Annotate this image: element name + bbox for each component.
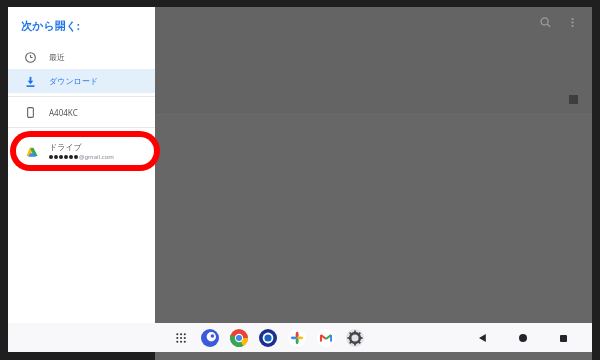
button[interactable]: Gmail — [316, 328, 336, 348]
staticText: 次から開く: — [21, 18, 80, 33]
button[interactable]: Search — [535, 12, 555, 32]
button[interactable]: ドライブ — [16, 137, 154, 165]
button[interactable]: Back — [474, 329, 492, 347]
button[interactable]: Home — [514, 329, 532, 347]
button[interactable]: 最近 — [8, 45, 155, 69]
button[interactable]: Recents — [554, 329, 572, 347]
staticText: ドライブ — [49, 142, 82, 152]
button[interactable]: All apps — [171, 328, 191, 348]
staticText: @gmail.com — [79, 153, 114, 161]
button[interactable]: Camera — [258, 328, 278, 348]
staticText: 最近 — [49, 52, 65, 62]
staticText: A404KC — [49, 107, 78, 118]
button[interactable]: Chrome — [229, 328, 249, 348]
button[interactable]: Photos — [287, 328, 307, 348]
staticText: ダウンロード — [49, 76, 98, 86]
button[interactable]: Settings — [345, 328, 365, 348]
button[interactable]: Assistant — [200, 328, 220, 348]
button[interactable]: ダウンロード — [8, 69, 155, 93]
button[interactable]: More options — [562, 12, 582, 32]
button[interactable]: A404KC — [8, 100, 155, 124]
button[interactable] — [8, 131, 155, 161]
